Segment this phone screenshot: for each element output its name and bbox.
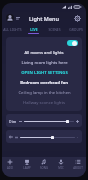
staticText: SCENES xyxy=(48,27,61,32)
button[interactable]: GROUPS xyxy=(65,25,86,35)
button[interactable]: MIC xyxy=(52,159,69,177)
staticText: Ceiling lamp in the kitchen xyxy=(18,90,71,96)
staticText: · xyxy=(77,135,79,140)
button[interactable]: ALL LIGHTS xyxy=(2,25,23,35)
staticText: LIVE xyxy=(30,27,38,32)
button[interactable]: Account menu xyxy=(6,14,20,22)
button[interactable]: ABOUT xyxy=(69,159,86,177)
button[interactable]: SCENES xyxy=(44,25,65,35)
button[interactable]: Toggle lights xyxy=(67,40,78,46)
button[interactable]: LIVE xyxy=(23,25,44,35)
staticText: LAMP xyxy=(23,166,31,170)
staticText: Light Menu xyxy=(29,15,59,22)
button[interactable]: LAMP xyxy=(18,159,35,177)
staticText: ABOUT xyxy=(73,166,83,170)
button[interactable]: Bedroom overhead fan xyxy=(6,78,82,88)
button[interactable]: All rooms and lights xyxy=(6,48,82,58)
button[interactable]: SONG xyxy=(35,159,52,177)
staticText: ADD xyxy=(7,166,13,170)
staticText: GROUPS xyxy=(69,27,83,32)
button[interactable]: ADD xyxy=(2,159,18,177)
staticText: OPEN LIGHT SETTINGS xyxy=(21,70,68,76)
staticText: MIC xyxy=(58,166,64,170)
button[interactable]: Hallway sconce lights xyxy=(6,98,82,108)
button[interactable]: Living room lights here xyxy=(6,58,82,68)
button[interactable]: Brightness slider xyxy=(6,114,82,127)
staticText: Dim xyxy=(9,119,17,124)
staticText: All rooms and lights xyxy=(24,50,64,56)
staticText: ALL LIGHTS xyxy=(3,27,22,32)
button[interactable]: Ceiling lamp in the kitchen xyxy=(6,88,82,98)
button[interactable]: Colour temperature slider xyxy=(6,130,82,143)
button[interactable]: Settings xyxy=(73,14,82,23)
staticText: Bedroom overhead fan xyxy=(20,80,68,86)
button[interactable]: OPEN LIGHT SETTINGS xyxy=(6,68,82,78)
staticText: SONG xyxy=(40,166,48,170)
staticText: Hallway sconce lights xyxy=(23,100,65,106)
staticText: Living room lights here xyxy=(21,60,68,66)
